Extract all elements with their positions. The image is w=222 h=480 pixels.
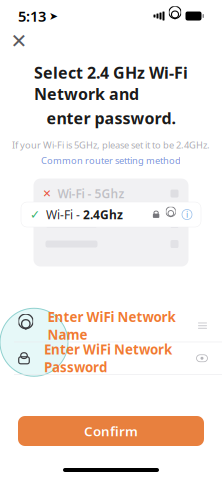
staticText: ➤ xyxy=(49,10,58,22)
staticText: Select 2.4 GHz Wi-Fi Network and xyxy=(34,62,188,104)
staticText: If your Wi-Fi is 5GHz, please set it to … xyxy=(12,139,210,151)
staticText: ✕ xyxy=(10,30,27,52)
button[interactable]: Enter WiFi Network Password xyxy=(0,342,222,374)
button[interactable]: Common router setting method xyxy=(41,151,181,166)
staticText: ✓ xyxy=(30,208,40,221)
staticText: Enter WiFi Network Password xyxy=(44,341,172,376)
button[interactable]: Close xyxy=(6,28,32,54)
button[interactable]: Confirm xyxy=(18,416,204,446)
staticText: Confirm xyxy=(84,422,138,440)
button[interactable]: Enter WiFi Network Name xyxy=(0,310,222,342)
staticText: Common router setting method xyxy=(41,154,181,166)
staticText: Enter WiFi Network Name xyxy=(48,308,176,343)
staticText: enter password. xyxy=(46,107,175,129)
staticText: i xyxy=(186,209,188,220)
staticText: Wi-Fi - xyxy=(46,207,83,222)
staticText: 5:13 xyxy=(18,6,46,26)
button[interactable]: ✓ xyxy=(21,202,201,227)
staticText: 2.4Ghz xyxy=(83,207,123,222)
staticText: Wi-Fi - 5Ghz xyxy=(57,186,124,201)
staticText: ✕ xyxy=(42,187,51,200)
